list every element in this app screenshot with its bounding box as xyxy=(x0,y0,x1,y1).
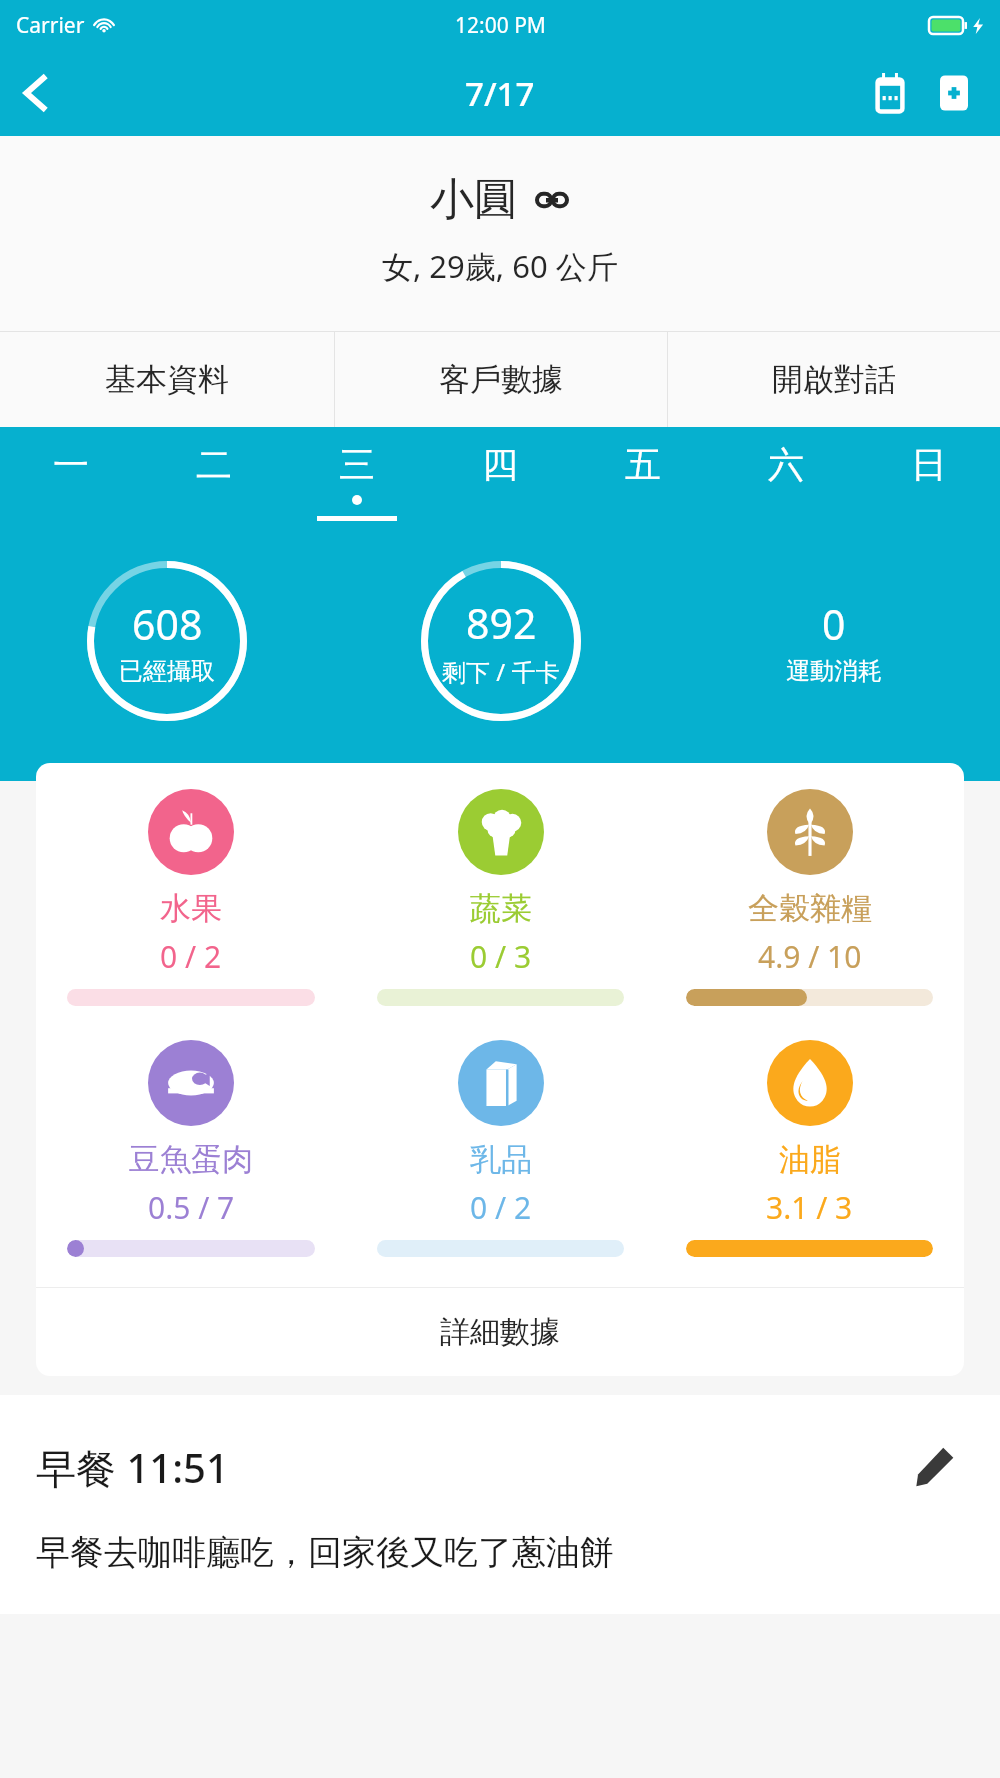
staticText: 油脂 xyxy=(779,1140,841,1179)
staticText: 892 xyxy=(466,595,537,651)
button[interactable]: 四 xyxy=(428,427,571,525)
button[interactable]: 三 xyxy=(285,427,428,525)
button[interactable]: 基本資料 xyxy=(0,331,334,427)
button[interactable]: 二 xyxy=(142,427,285,525)
button[interactable]: Back xyxy=(0,57,72,129)
staticText: 3.1 / 3 xyxy=(766,1187,853,1228)
staticText: 四 xyxy=(482,442,518,487)
staticText: 客戶數據 xyxy=(439,360,563,399)
button[interactable]: Edit xyxy=(904,1437,964,1497)
staticText: 早餐去咖啡廳吃，回家後又吃了蔥油餅 xyxy=(36,1531,614,1574)
staticText: 4.9 / 10 xyxy=(758,936,862,977)
staticText: 三 xyxy=(339,442,375,487)
staticText: 乳品 xyxy=(470,1140,532,1179)
staticText: 蔬菜 xyxy=(470,889,532,928)
button[interactable]: 開啟對話 xyxy=(667,331,1000,427)
staticText: 五 xyxy=(625,442,661,487)
button[interactable]: 五 xyxy=(571,427,714,525)
staticText: 運動消耗 xyxy=(786,656,882,686)
button[interactable]: 水果 xyxy=(36,789,346,1006)
staticText: 0.5 / 7 xyxy=(148,1187,235,1228)
staticText: 12:00 PM xyxy=(455,11,546,40)
staticText: 詳細數據 xyxy=(440,1313,560,1351)
staticText: 0 / 2 xyxy=(160,936,222,977)
staticText: 豆魚蛋肉 xyxy=(129,1140,253,1179)
staticText: 水果 xyxy=(160,889,222,928)
staticText: 日 xyxy=(911,442,947,487)
button[interactable]: 乳品 xyxy=(346,1040,655,1257)
staticText: 小圓 xyxy=(430,172,518,227)
staticText: 7/17 xyxy=(465,71,535,116)
staticText: 基本資料 xyxy=(105,360,229,399)
staticText: 一 xyxy=(53,442,89,487)
button[interactable]: 日 xyxy=(857,427,1000,525)
button[interactable]: 客戶數據 xyxy=(334,331,667,427)
staticText: 已經攝取 xyxy=(119,656,215,686)
button[interactable]: 蔬菜 xyxy=(346,789,655,1006)
staticText: 608 xyxy=(132,596,203,652)
button[interactable]: Link xyxy=(534,182,570,218)
staticText: 開啟對話 xyxy=(772,360,896,399)
staticText: 0 xyxy=(822,596,846,652)
staticText: 二 xyxy=(196,442,232,487)
button[interactable]: 608 xyxy=(87,561,247,721)
staticText: 0 / 3 xyxy=(470,936,532,977)
staticText: 女, 29歲, 60 公斤 xyxy=(382,245,618,287)
button[interactable]: 一 xyxy=(0,427,142,525)
staticText: 剩下 / 千卡 xyxy=(442,655,560,688)
staticText: 0 / 2 xyxy=(470,1187,532,1228)
button[interactable]: 詳細數據 xyxy=(36,1288,964,1376)
button[interactable]: 豆魚蛋肉 xyxy=(36,1040,346,1257)
button[interactable]: 油脂 xyxy=(655,1040,964,1257)
button[interactable]: 六 xyxy=(714,427,857,525)
staticText: Carrier xyxy=(16,11,85,40)
button[interactable]: 892 xyxy=(421,561,581,721)
staticText: 早餐 11:51 xyxy=(36,1440,904,1495)
staticText: 全穀雜糧 xyxy=(748,889,872,928)
staticText: 六 xyxy=(768,442,804,487)
button[interactable]: Calendar xyxy=(858,61,922,125)
button[interactable]: 全穀雜糧 xyxy=(655,789,964,1006)
button[interactable]: Add xyxy=(922,61,986,125)
